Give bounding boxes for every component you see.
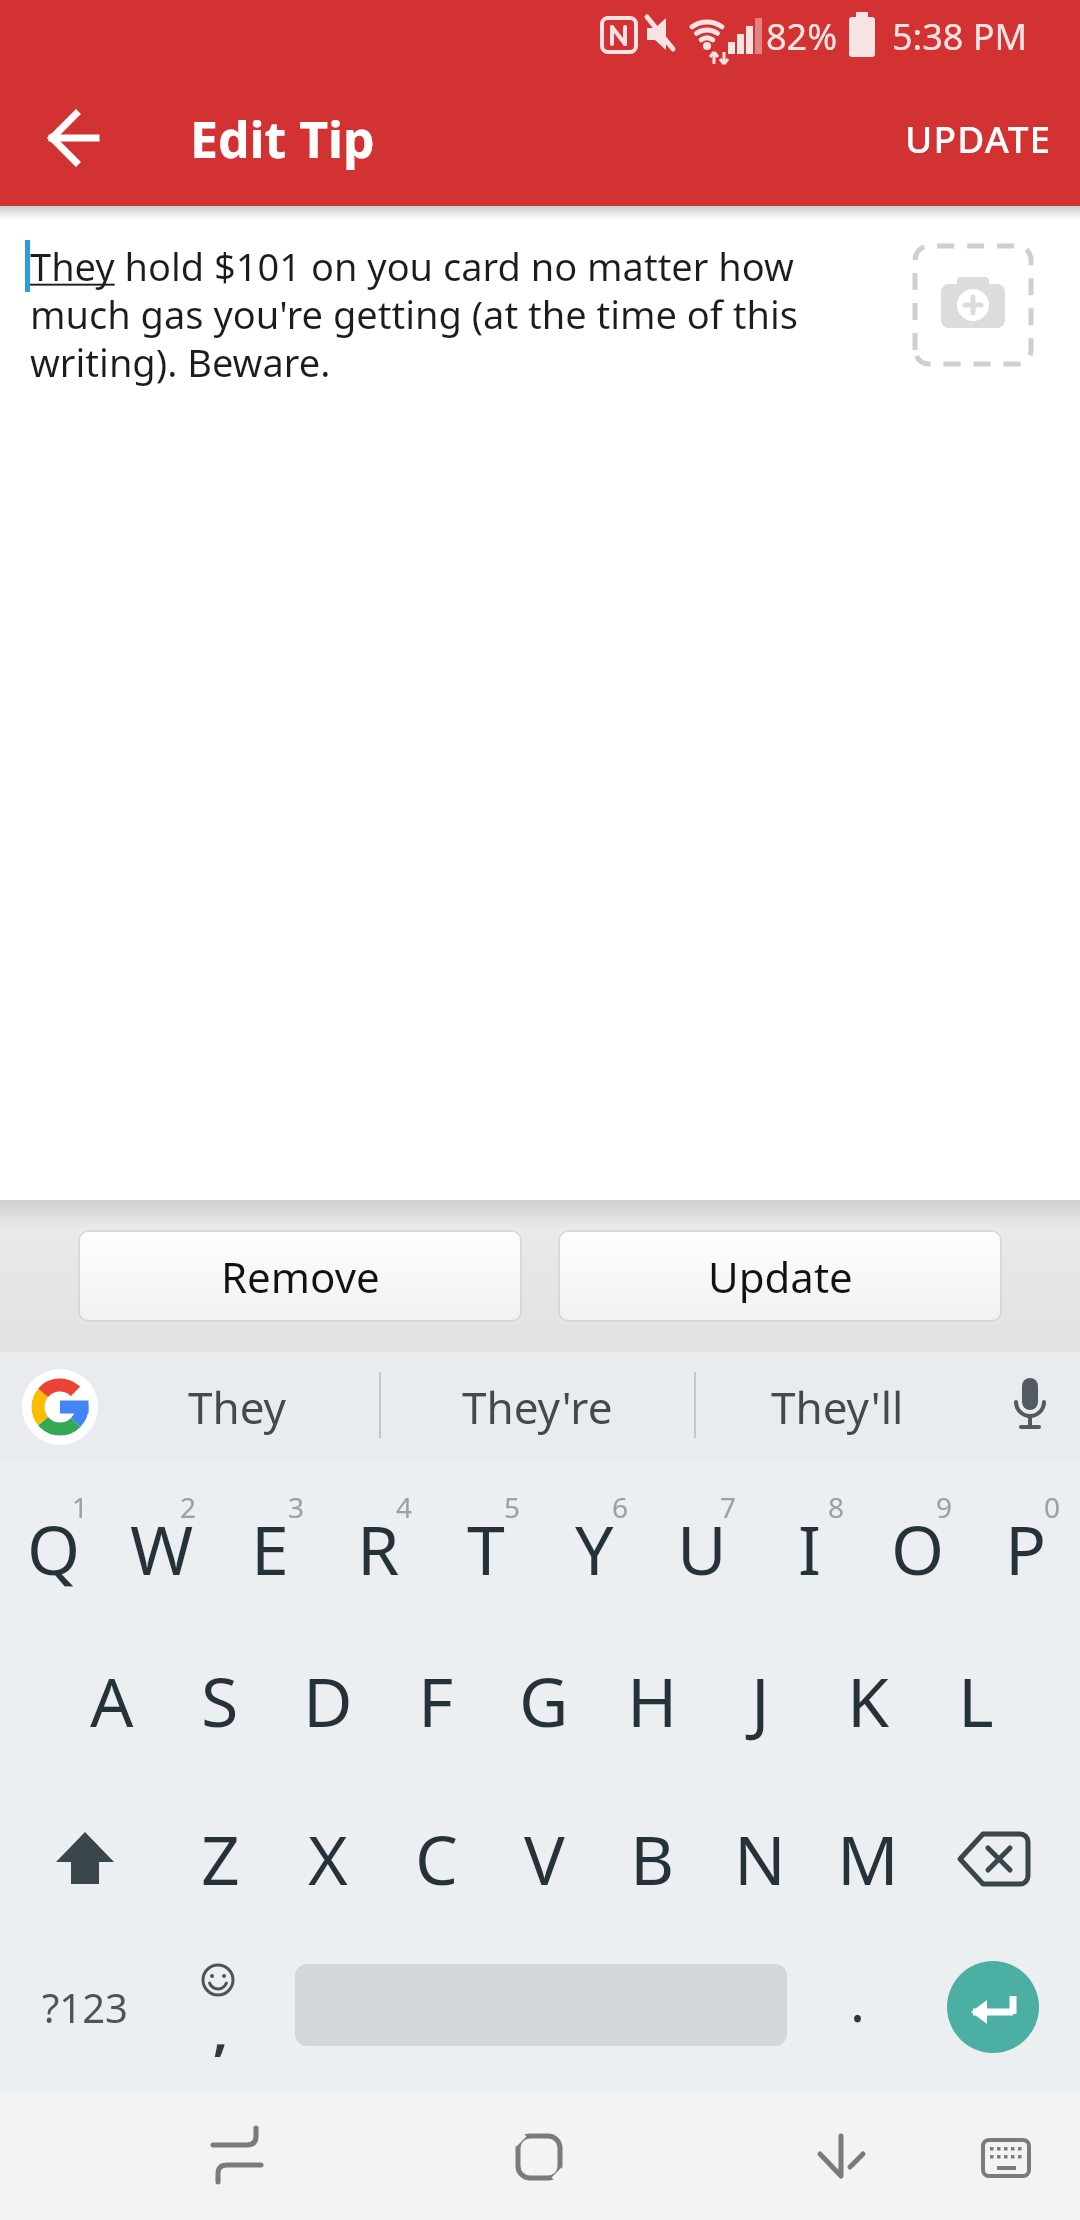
staticText: G	[519, 1654, 569, 1747]
staticText: 3	[288, 1488, 305, 1524]
staticText: L	[958, 1654, 994, 1747]
staticText: W	[130, 1502, 194, 1595]
staticText: C	[415, 1812, 458, 1905]
staticText: B	[630, 1812, 675, 1905]
staticText: 5:38 PM	[892, 12, 1028, 58]
staticText: much gas you're getting (at the time of …	[30, 288, 799, 340]
staticText: 0	[1044, 1488, 1061, 1524]
staticText: ?123	[42, 1980, 128, 2034]
staticText: V	[524, 1812, 565, 1905]
staticText: Remove	[221, 1248, 380, 1305]
staticText: E	[251, 1502, 289, 1595]
staticText: K	[847, 1654, 890, 1747]
staticText: X	[308, 1812, 348, 1905]
staticText: They'll	[771, 1377, 904, 1437]
staticText: R	[357, 1502, 400, 1595]
staticText: U	[677, 1502, 727, 1595]
staticText: 8	[828, 1488, 845, 1524]
staticText: O	[891, 1502, 945, 1595]
staticText: A	[90, 1654, 134, 1747]
staticText: .	[850, 1962, 866, 2038]
staticText: ,	[213, 1994, 228, 2065]
staticText: I	[798, 1502, 822, 1595]
staticText: Z	[201, 1812, 240, 1905]
staticText: 2	[180, 1488, 197, 1524]
staticText: P	[1005, 1502, 1047, 1595]
staticText: Update	[708, 1248, 853, 1305]
staticText: They hold $101 on you card no matter how	[30, 240, 794, 292]
staticText: T	[467, 1502, 505, 1595]
staticText: Y	[575, 1502, 614, 1595]
staticText: F	[418, 1654, 454, 1747]
staticText: J	[751, 1654, 770, 1747]
staticText: They	[188, 1377, 287, 1437]
staticText: writing). Beware.	[30, 336, 331, 388]
staticText: H	[627, 1654, 678, 1747]
staticText: M	[837, 1812, 899, 1905]
staticText: UPDATE	[905, 113, 1052, 163]
staticText: 1	[72, 1488, 89, 1524]
staticText: 5	[504, 1488, 521, 1524]
staticText: Q	[27, 1502, 81, 1595]
staticText: D	[303, 1654, 353, 1747]
staticText: 6	[612, 1488, 629, 1524]
staticText: They're	[462, 1377, 613, 1437]
staticText: 82%	[766, 12, 838, 58]
staticText: 9	[936, 1488, 953, 1524]
staticText: N	[734, 1812, 786, 1905]
staticText: Edit Tip	[190, 105, 375, 173]
staticText: 4	[396, 1488, 413, 1524]
staticText: S	[201, 1654, 239, 1747]
staticText: 7	[720, 1488, 737, 1524]
